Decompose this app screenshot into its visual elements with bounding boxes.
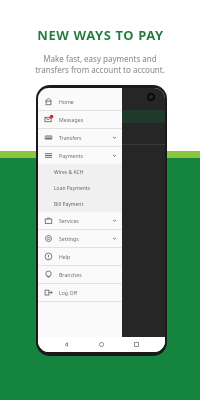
button[interactable]: Bill Payment [38, 196, 122, 212]
staticText: Bill Payment [54, 201, 84, 208]
button[interactable]: Branches [38, 266, 122, 283]
button[interactable]: Recent apps [130, 338, 143, 351]
button[interactable]: Settings [38, 230, 122, 247]
staticText: Transfers [59, 134, 82, 141]
staticText: Home [59, 98, 74, 105]
button[interactable]: Home [38, 93, 122, 110]
staticText: Log Off [59, 289, 78, 296]
button[interactable]: Messages [38, 111, 122, 128]
button[interactable]: Services [38, 212, 122, 229]
button[interactable]: Home [95, 338, 108, 351]
staticText: Wires & ACH [54, 169, 84, 176]
staticText: Payments [59, 152, 84, 159]
staticText: Loan Payments [54, 185, 91, 192]
staticText: Make fast, easy payments and transfers f… [35, 53, 165, 76]
staticText: Settings [59, 235, 79, 242]
staticText: Messages [59, 116, 84, 123]
staticText: Branches [59, 271, 82, 278]
button[interactable]: Back [60, 338, 73, 351]
button[interactable]: Wires & ACH [38, 164, 122, 180]
staticText: NEW WAYS TO PAY [37, 26, 164, 44]
button[interactable]: Log Off [38, 284, 122, 301]
button[interactable]: Transfers [38, 129, 122, 146]
staticText: Help [59, 253, 71, 260]
staticText: Services [59, 217, 79, 224]
button[interactable]: Loan Payments [38, 180, 122, 196]
button[interactable]: Help [38, 248, 122, 265]
button[interactable]: Payments [38, 147, 122, 164]
